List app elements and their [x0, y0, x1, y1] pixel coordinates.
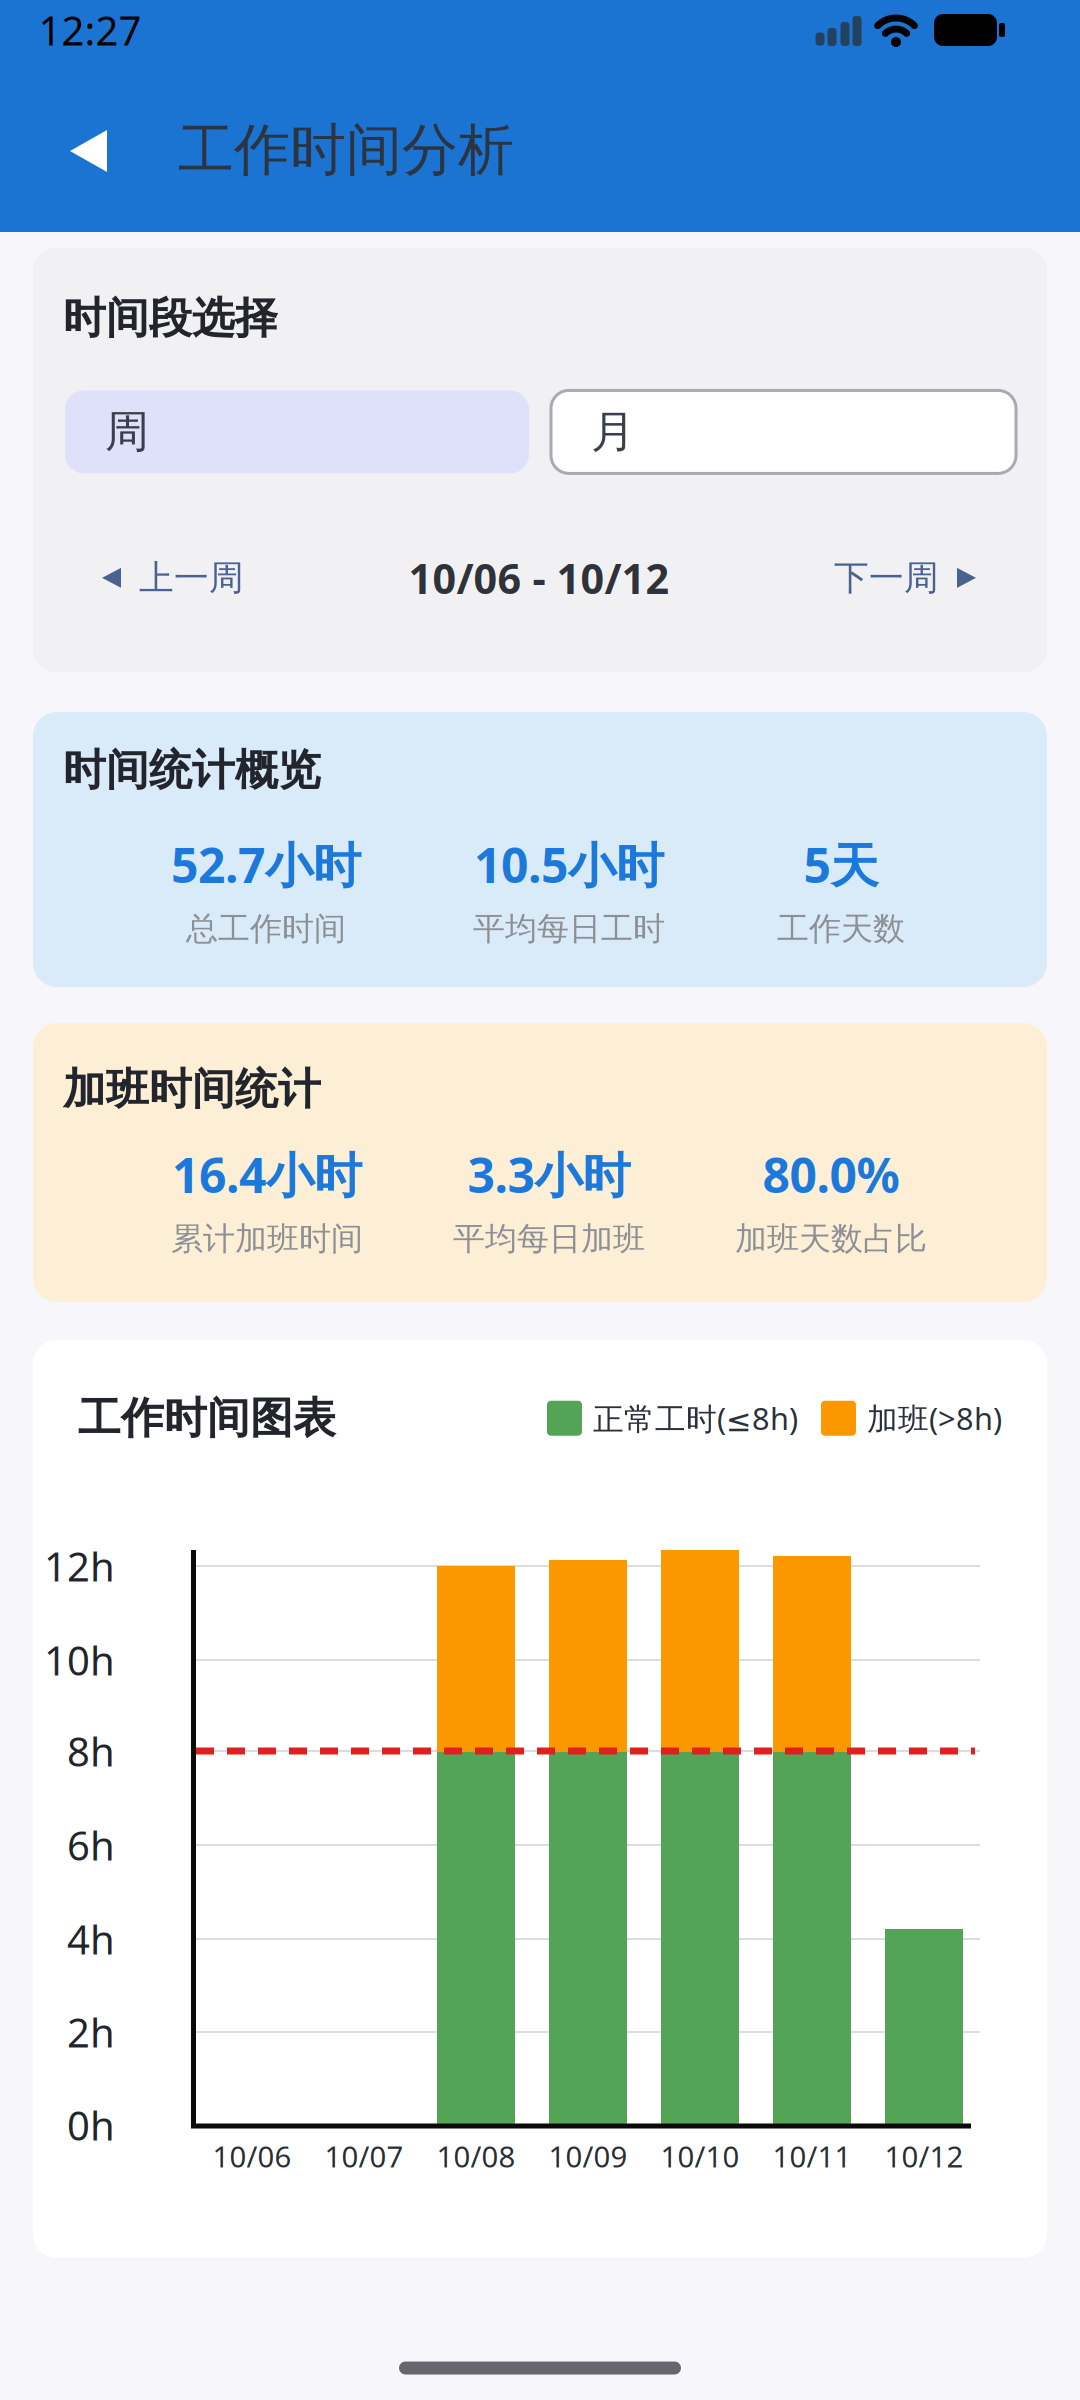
staticText: 时间段选择: [63, 292, 278, 344]
button[interactable]: 月: [551, 390, 1016, 473]
staticText: 周: [105, 405, 149, 459]
staticText: 时间统计概览: [63, 744, 321, 796]
staticText: 总工作时间: [186, 909, 346, 948]
staticText: 工作天数: [777, 909, 905, 948]
staticText: 5天: [803, 832, 878, 896]
button[interactable]: 周: [65, 390, 529, 473]
staticText: 累计加班时间: [171, 1219, 363, 1258]
staticText: 10.5小时: [474, 832, 664, 896]
staticText: 8h: [67, 1724, 115, 1777]
staticText: 10h: [44, 1633, 115, 1686]
staticText: 3.3小时: [467, 1142, 630, 1206]
staticText: 2h: [67, 2005, 115, 2058]
staticText: 10/09: [548, 2136, 627, 2175]
staticText: 上一周: [139, 557, 244, 599]
staticText: 6h: [67, 1818, 115, 1871]
staticText: 10/10: [660, 2136, 739, 2175]
staticText: 平均每日工时: [473, 909, 665, 948]
staticText: 12:27: [38, 3, 141, 56]
staticText: 12h: [44, 1539, 115, 1592]
staticText: 工作时间分析: [178, 116, 514, 184]
staticText: 10/07: [324, 2136, 403, 2175]
staticText: 10/06: [212, 2136, 291, 2175]
staticText: 4h: [67, 1912, 115, 1965]
button[interactable]: [70, 130, 107, 172]
staticText: 加班(>8h): [867, 1398, 1002, 1438]
staticText: 下一周: [834, 557, 939, 599]
staticText: 10/06 - 10/12: [408, 550, 669, 605]
staticText: 10/11: [772, 2136, 851, 2175]
button[interactable]: 下一周: [834, 557, 976, 599]
staticText: 10/08: [436, 2136, 515, 2175]
staticText: 0h: [67, 2098, 115, 2151]
staticText: 16.4小时: [172, 1142, 362, 1206]
staticText: 正常工时(≤8h): [593, 1398, 798, 1438]
staticText: 52.7小时: [171, 832, 361, 896]
button[interactable]: 上一周: [102, 557, 244, 599]
staticText: 10/12: [884, 2136, 963, 2175]
staticText: 平均每日加班: [453, 1219, 645, 1258]
staticText: 加班时间统计: [63, 1063, 321, 1115]
staticText: 加班天数占比: [735, 1219, 927, 1258]
staticText: 80.0%: [762, 1142, 899, 1206]
staticText: 月: [591, 405, 635, 459]
staticText: 工作时间图表: [78, 1392, 336, 1444]
